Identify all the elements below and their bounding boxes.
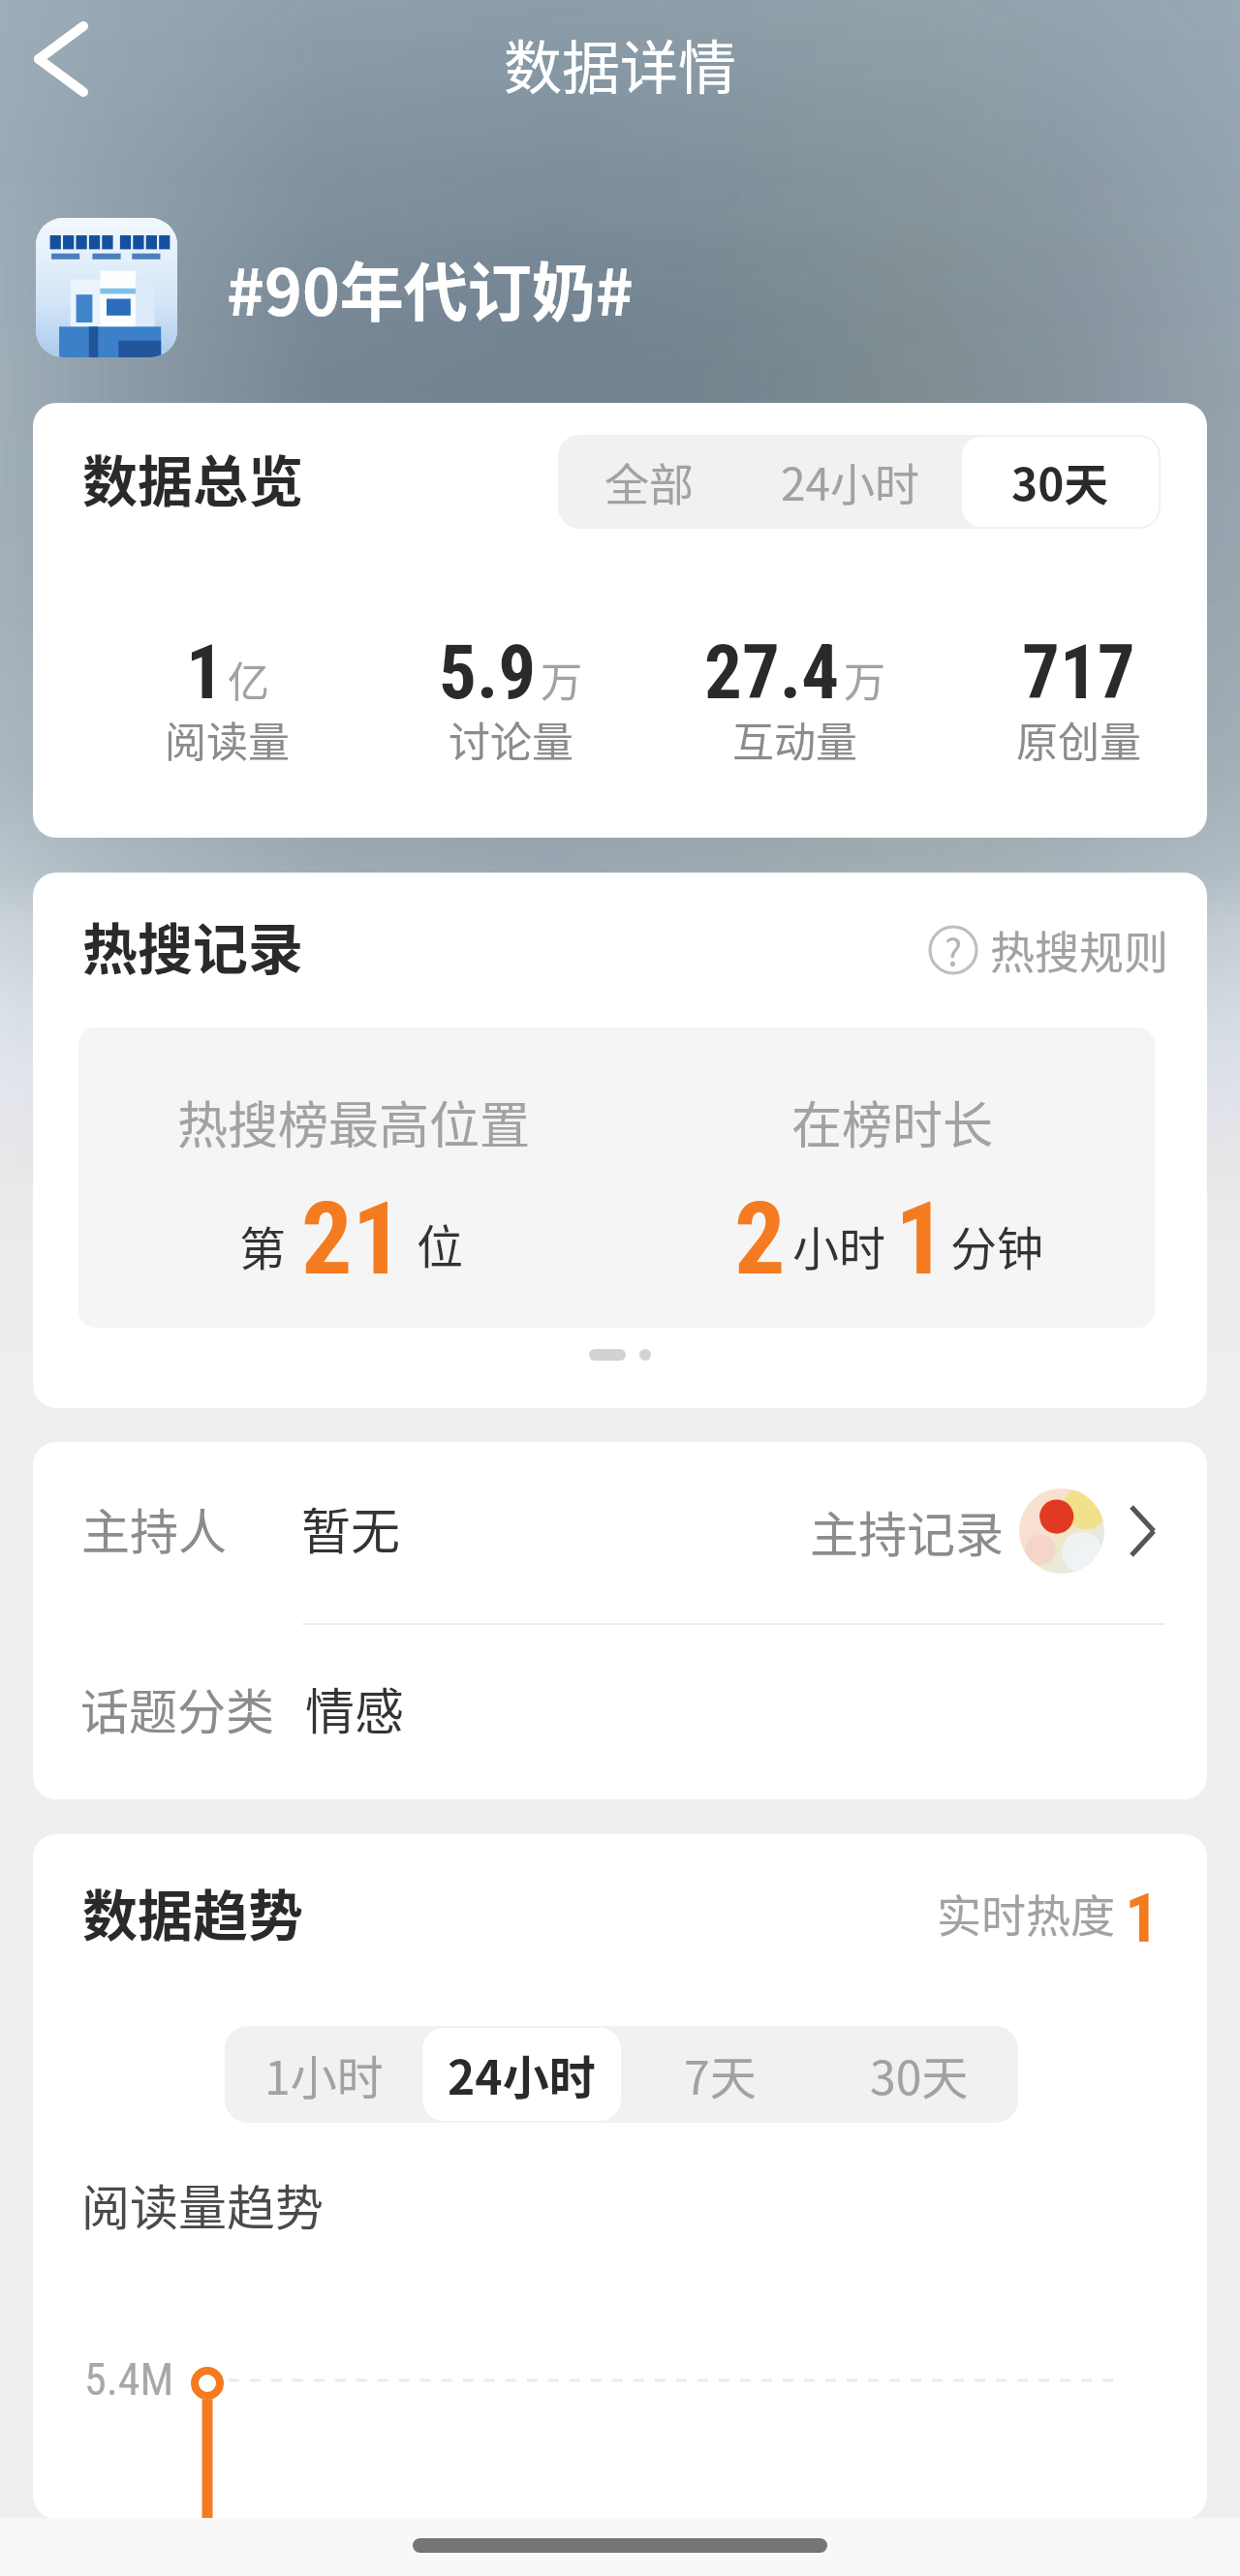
button[interactable]: ? xyxy=(929,917,1168,982)
staticText: 主持记录 xyxy=(810,1496,1004,1566)
button[interactable]: 30天 xyxy=(962,437,1159,527)
staticText: 热搜规则 xyxy=(990,917,1168,982)
staticText: ? xyxy=(945,924,963,972)
button[interactable]: 24小时 xyxy=(740,435,960,529)
staticText: 1 xyxy=(895,1181,946,1299)
button[interactable]: 30天 xyxy=(820,2028,1018,2121)
staticText: 30天 xyxy=(1011,449,1109,514)
staticText: 主持人 xyxy=(81,1493,227,1563)
button[interactable] xyxy=(929,1871,1191,1960)
button[interactable]: 1小时 xyxy=(225,2028,422,2121)
button[interactable]: 主持记录 xyxy=(810,1488,1159,1574)
staticText: 717 xyxy=(1022,629,1135,717)
staticText: 实时热度 xyxy=(937,1881,1115,1946)
staticText: 万 xyxy=(844,649,885,709)
staticText: 小时 xyxy=(792,1211,886,1279)
staticText: 5.4M xyxy=(84,2353,174,2406)
staticText: 全部 xyxy=(604,449,694,514)
staticText: 位 xyxy=(417,1210,464,1277)
button[interactable]: 7天 xyxy=(621,2028,820,2121)
staticText: #90年代订奶# xyxy=(227,241,634,334)
button[interactable]: Back xyxy=(15,13,108,106)
staticText: 万 xyxy=(541,649,582,709)
staticText: 数据趋势 xyxy=(82,1872,303,1952)
staticText: 原创量 xyxy=(1016,709,1141,769)
staticText: 亿 xyxy=(228,649,269,709)
staticText: 阅读量趋势 xyxy=(81,2169,324,2239)
staticText: 24小时 xyxy=(781,449,920,514)
staticText: 1 xyxy=(1125,1879,1160,1958)
staticText: 话题分类 xyxy=(80,1673,274,1743)
staticText: 21 xyxy=(301,1181,404,1299)
staticText: 数据总览 xyxy=(82,438,303,518)
staticText: 24小时 xyxy=(448,2040,596,2108)
staticText: 暂无 xyxy=(301,1492,401,1564)
staticText: 互动量 xyxy=(732,709,857,769)
staticText: 在榜时长 xyxy=(791,1086,994,1158)
staticText: 第 xyxy=(239,1211,287,1279)
staticText: 1 xyxy=(186,629,224,717)
staticText: 1小时 xyxy=(264,2040,384,2108)
staticText: 数据详情 xyxy=(504,21,736,106)
staticText: 7天 xyxy=(684,2040,757,2108)
staticText: 热搜榜最高位置 xyxy=(177,1086,531,1158)
staticText: 5.9 xyxy=(439,629,537,717)
staticText: 情感 xyxy=(305,1672,405,1744)
staticText: 分钟 xyxy=(950,1211,1044,1279)
staticText: 27.4 xyxy=(704,629,840,717)
staticText: 阅读量 xyxy=(165,709,290,769)
staticText: 热搜记录 xyxy=(82,905,303,986)
button[interactable]: 全部 xyxy=(558,435,740,529)
button[interactable]: 24小时 xyxy=(422,2028,621,2121)
staticText: 2 xyxy=(734,1181,786,1299)
staticText: 讨论量 xyxy=(449,709,573,769)
staticText: 30天 xyxy=(870,2040,969,2108)
